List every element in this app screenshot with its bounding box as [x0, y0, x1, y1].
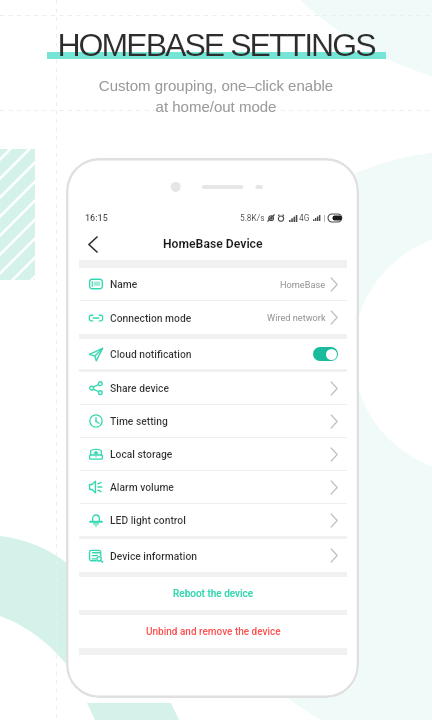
button[interactable]: Cloud notification [79, 339, 347, 369]
staticText: Cloud notification [110, 348, 313, 360]
staticText: Wired network [267, 312, 326, 323]
staticText: Local storage [110, 448, 330, 460]
button[interactable]: Name [79, 268, 347, 300]
staticText: Custom grouping, one–click enable at hom… [0, 77, 432, 115]
staticText: 5.8K/s [240, 213, 265, 223]
staticText: Time setting [110, 415, 330, 427]
button[interactable]: Connection mode [79, 301, 347, 334]
button[interactable]: Reboot the device [79, 577, 347, 610]
staticText: Connection mode [110, 312, 267, 324]
button[interactable]: Unbind and remove the device [79, 615, 347, 648]
staticText: Alarm volume [110, 481, 330, 493]
staticText: Name [110, 278, 280, 290]
staticText: Unbind and remove the device [146, 626, 281, 638]
staticText: LED light control [110, 514, 330, 526]
staticText: Reboot the device [173, 588, 254, 600]
staticText: Device information [110, 550, 330, 562]
button[interactable]: Time setting [79, 405, 347, 437]
button[interactable]: Alarm volume [79, 471, 347, 503]
staticText: HomeBase [280, 279, 326, 290]
staticText: 16:15 [85, 213, 108, 224]
button[interactable]: Back [88, 231, 108, 257]
staticText: HOMEBASE SETTINGS [0, 27, 432, 63]
button[interactable]: Share device [79, 372, 347, 404]
button[interactable]: LED light control [79, 504, 347, 536]
staticText: Share device [110, 382, 330, 394]
staticText: 4G [299, 213, 310, 223]
button[interactable]: Device information [79, 539, 347, 572]
button[interactable]: Local storage [79, 438, 347, 470]
staticText: HomeBase Device [163, 237, 263, 251]
